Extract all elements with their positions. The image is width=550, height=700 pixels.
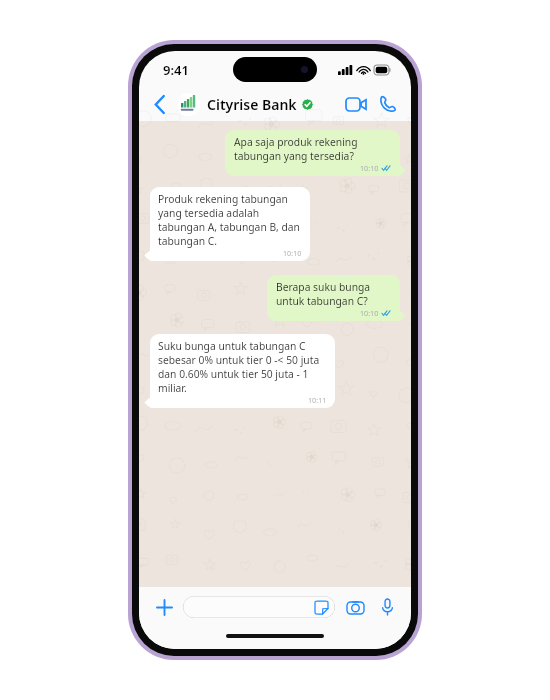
staticText: Apa saja produk rekening tabungan yang t… [234,135,392,163]
staticText: 10:10 [283,248,302,258]
button[interactable]: Apa saja produk rekening tabungan yang t… [225,130,400,176]
button[interactable]: Cityrise Bank [207,95,297,114]
staticText: 10:11 [308,395,327,405]
button[interactable]: Cityrise Bank profile [177,93,200,116]
staticText: 10:10 [360,308,379,318]
staticText: Berapa suku bunga untuk tabungan C? [276,280,392,308]
button[interactable]: Voice message [375,595,399,619]
button[interactable]: Video call [341,89,371,119]
staticText: Suku bunga untuk tabungan C sebesar 0% u… [158,339,327,395]
staticText: 10:10 [360,163,379,173]
button[interactable]: Stickers [183,596,335,618]
button[interactable]: Stickers [315,601,328,614]
button[interactable]: Suku bunga untuk tabungan C sebesar 0% u… [150,334,335,408]
staticText: 9:41 [163,61,189,79]
button[interactable]: Produk rekening tabungan yang tersedia a… [150,187,310,261]
button[interactable]: Attach [151,594,177,620]
button[interactable]: Back [147,91,173,117]
button[interactable]: Berapa suku bunga untuk tabungan C? [267,275,400,321]
staticText: Produk rekening tabungan yang tersedia a… [158,192,302,248]
button[interactable]: Voice call [373,89,403,119]
button[interactable]: Camera [343,595,367,619]
